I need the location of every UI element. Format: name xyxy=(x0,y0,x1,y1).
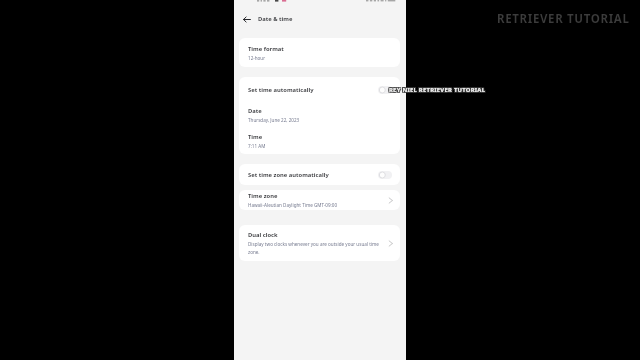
staticText: 7:11 AM xyxy=(248,143,266,149)
button[interactable]: Set time zone automatically xyxy=(239,164,400,185)
staticText: Date xyxy=(248,107,262,115)
staticText: Time xyxy=(248,133,263,141)
staticText: Time format xyxy=(248,45,284,53)
staticText: REY NIEL RETRIEVER TUTORIAL xyxy=(388,85,485,93)
button[interactable]: Back xyxy=(240,12,254,26)
staticText: Date & time xyxy=(258,15,293,23)
staticText: REY NIEL RETRIEVER TUTORIAL xyxy=(389,87,486,95)
staticText: Thursday, June 22, 2023 xyxy=(248,117,300,123)
button[interactable]: Time xyxy=(239,128,400,154)
staticText: REY NIEL RETRIEVER TUTORIAL xyxy=(388,87,485,95)
button[interactable]: Time format xyxy=(239,38,400,67)
staticText: Time zone xyxy=(248,192,278,200)
staticText: RETRIEVER TUTORIAL xyxy=(497,11,630,27)
staticText: REY NIEL RETRIEVER TUTORIAL xyxy=(389,85,486,93)
staticText: REY NIEL RETRIEVER TUTORIAL xyxy=(390,86,487,94)
staticText: Hawaii-Aleutian Daylight Time GMT-09:00 xyxy=(248,202,338,208)
staticText: 12-hour xyxy=(248,55,266,61)
staticText: Set time zone automatically xyxy=(248,171,378,179)
staticText: REY NIEL RETRIEVER TUTORIAL xyxy=(388,86,485,94)
button[interactable]: Time zone xyxy=(239,190,400,210)
staticText: Display two clocks whenever you are outs… xyxy=(248,241,386,255)
button[interactable]: Date xyxy=(239,102,400,128)
staticText: REY NIEL RETRIEVER TUTORIAL xyxy=(390,85,487,93)
staticText: REY NIEL RETRIEVER TUTORIAL xyxy=(389,86,486,94)
staticText: Dual clock xyxy=(248,231,278,239)
button[interactable]: Dual clock xyxy=(239,225,400,261)
button[interactable]: Set time automatically xyxy=(239,77,400,102)
staticText: Set time automatically xyxy=(248,86,378,94)
staticText: REY NIEL RETRIEVER TUTORIAL xyxy=(390,87,487,95)
